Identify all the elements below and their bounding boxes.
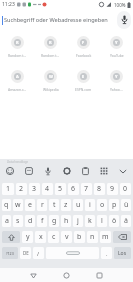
button[interactable]: t <box>49 199 59 211</box>
staticText: j <box>77 216 79 226</box>
button[interactable]: z <box>61 199 71 211</box>
button[interactable]: 4 <box>42 183 53 195</box>
staticText: ESPN.com <box>75 87 92 92</box>
button[interactable]: ä <box>121 215 131 227</box>
button[interactable] <box>46 247 99 259</box>
staticText: 4 <box>45 184 50 194</box>
button[interactable]: w <box>13 199 23 211</box>
staticText: m <box>102 232 109 242</box>
staticText: Random t... <box>8 53 27 58</box>
button[interactable] <box>79 165 91 177</box>
button[interactable]: u <box>73 199 83 211</box>
button[interactable]: o <box>97 199 107 211</box>
button[interactable] <box>117 11 131 29</box>
button[interactable]: 5 <box>55 183 66 195</box>
button[interactable]: . <box>101 247 112 259</box>
button[interactable]: Y <box>100 36 133 58</box>
button[interactable]: v <box>61 231 72 243</box>
staticText: / <box>37 250 40 257</box>
button[interactable]: f <box>37 215 47 227</box>
button[interactable] <box>113 231 131 243</box>
staticText: p <box>112 200 117 210</box>
button[interactable]: 2 <box>16 183 27 195</box>
button[interactable]: Y <box>100 70 133 92</box>
button[interactable]: b <box>74 231 85 243</box>
button[interactable]: ö <box>109 215 119 227</box>
button[interactable]: g <box>49 215 59 227</box>
button[interactable] <box>117 165 129 177</box>
button[interactable]: Suchbegriff oder Webadresse eingeben <box>0 9 133 30</box>
button[interactable]: W <box>34 70 67 92</box>
button[interactable]: q <box>2 199 11 211</box>
button[interactable] <box>94 270 105 281</box>
button[interactable]: R <box>34 36 67 58</box>
button[interactable] <box>42 165 54 177</box>
button[interactable] <box>2 231 20 243</box>
button[interactable] <box>28 270 39 281</box>
button[interactable]: x <box>35 231 46 243</box>
staticText: r <box>41 200 44 210</box>
button[interactable]: Los <box>114 247 131 259</box>
button[interactable]: A <box>0 70 34 92</box>
button[interactable]: y <box>22 231 33 243</box>
button[interactable]: ü <box>121 199 131 211</box>
staticText: F <box>82 40 85 45</box>
button[interactable]: k <box>85 215 95 227</box>
staticText: 9 <box>110 184 115 194</box>
staticText: v <box>65 232 69 242</box>
button[interactable]: p <box>109 199 119 211</box>
button[interactable]: d <box>25 215 35 227</box>
button[interactable]: R <box>0 36 34 58</box>
button[interactable]: r <box>37 199 47 211</box>
staticText: 100% <box>114 2 126 8</box>
button[interactable]: E <box>67 70 100 92</box>
button[interactable] <box>23 165 35 177</box>
button[interactable]: 6 <box>68 183 79 195</box>
staticText: YouTube <box>110 53 124 58</box>
staticText: Suchbegriff oder Webadresse eingeben <box>4 16 108 24</box>
button[interactable]: 8 <box>94 183 105 195</box>
button[interactable]: j <box>73 215 83 227</box>
staticText: 0 <box>123 184 128 194</box>
button[interactable]: 7 <box>81 183 92 195</box>
button[interactable]: s <box>13 215 23 227</box>
button[interactable]: 9 <box>107 183 118 195</box>
staticText: q <box>4 200 9 210</box>
button[interactable]: n <box>87 231 98 243</box>
button[interactable]: a <box>2 215 11 227</box>
button[interactable]: l <box>97 215 107 227</box>
staticText: 3 <box>32 184 37 194</box>
staticText: ü <box>124 200 129 210</box>
button[interactable]: 1 <box>2 183 14 195</box>
staticText: Wikipedia <box>43 87 59 92</box>
button[interactable]: e <box>25 199 35 211</box>
staticText: ö <box>112 216 117 226</box>
button[interactable] <box>61 165 73 177</box>
staticText: Y <box>115 40 118 45</box>
staticText: Y <box>115 74 118 79</box>
button[interactable]: c <box>48 231 59 243</box>
button[interactable] <box>98 165 110 177</box>
staticText: R <box>49 40 52 45</box>
button[interactable]: ?123 <box>2 247 18 259</box>
staticText: . <box>106 250 108 257</box>
button[interactable]: m <box>100 231 111 243</box>
button[interactable]: 3 <box>29 183 40 195</box>
button[interactable]: h <box>61 215 71 227</box>
staticText: E <box>82 74 85 79</box>
staticText: 5 <box>58 184 63 194</box>
staticText: 7 <box>84 184 89 194</box>
staticText: l <box>101 216 103 226</box>
button[interactable]: i <box>85 199 95 211</box>
staticText: h <box>64 216 69 226</box>
button[interactable]: DE <box>20 247 31 259</box>
button[interactable]: F <box>67 36 100 58</box>
button[interactable]: / <box>33 247 44 259</box>
staticText: c <box>52 232 56 242</box>
staticText: Los <box>118 250 127 257</box>
button[interactable] <box>4 165 16 177</box>
staticText: 2 <box>19 184 24 194</box>
button[interactable]: 0 <box>120 183 131 195</box>
staticText: n <box>90 232 95 242</box>
button[interactable] <box>61 270 72 281</box>
